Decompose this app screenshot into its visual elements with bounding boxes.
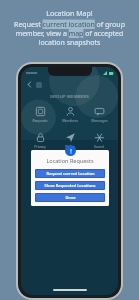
button[interactable]: Show Requested Locations [36,182,104,189]
staticText: Location Map! [46,9,93,19]
staticText: Requests [32,118,48,123]
button[interactable]: Messages [85,105,113,124]
button[interactable]: Back [26,81,33,88]
button[interactable]: Saved [85,131,113,150]
staticText: Show Requested Locations [44,183,96,188]
staticText: Location Requests [46,157,94,164]
staticText: Saved [94,144,104,149]
staticText: Done [65,195,76,200]
button[interactable]: Request current Location [36,170,104,177]
staticText: Request current Location [46,171,95,176]
staticText: Privacy [34,144,46,149]
button[interactable]: Done [36,194,104,201]
button[interactable]: Share [56,131,84,150]
staticText: Request current location of group member… [14,20,125,47]
staticText: Members [62,118,78,123]
button[interactable]: Requests [26,105,54,124]
button[interactable]: Privacy [26,131,54,150]
staticText: Share [65,144,75,149]
staticText: GROUP MEMBERS [21,94,118,99]
button[interactable]: Members [56,105,84,124]
staticText: Messages [91,118,108,123]
button[interactable]: Menu [36,82,42,88]
